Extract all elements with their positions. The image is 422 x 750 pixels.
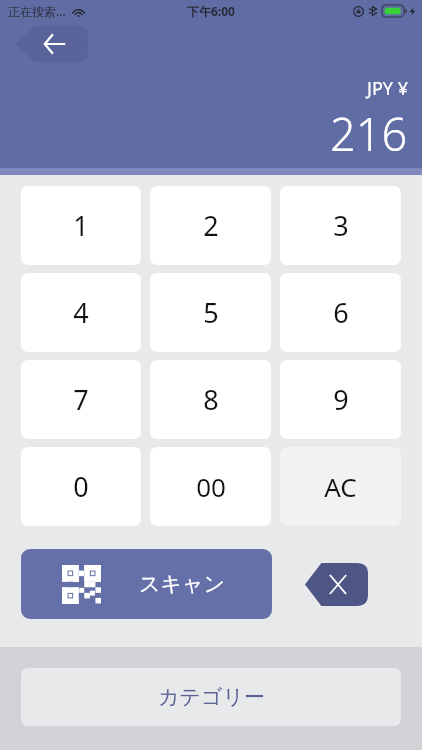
staticText: 9 [333,381,349,418]
button[interactable]: 8 [150,360,271,439]
staticText: 0 [73,468,89,505]
button[interactable]: Back [16,26,88,62]
button[interactable]: 6 [280,273,401,352]
button[interactable]: 7 [21,360,141,439]
staticText: 1 [73,207,89,244]
button[interactable]: 0 [21,447,141,526]
button[interactable]: 2 [150,186,271,265]
staticText: 7 [73,381,89,418]
button[interactable]: 9 [280,360,401,439]
button[interactable]: Delete [305,563,368,606]
staticText: 2 [203,207,219,244]
staticText: カテゴリー [158,684,265,710]
button[interactable]: 3 [280,186,401,265]
staticText: 6 [333,294,349,331]
staticText: 3 [333,207,349,244]
staticText: 216 [330,103,408,164]
staticText: スキャン [139,571,225,597]
button[interactable]: スキャン [21,549,272,619]
button[interactable]: 5 [150,273,271,352]
staticText: 00 [196,469,226,504]
staticText: 5 [203,294,219,331]
button[interactable]: AC [280,447,401,526]
button[interactable]: 4 [21,273,141,352]
staticText: 下午6:00 [187,3,235,19]
staticText: 8 [203,381,219,418]
button[interactable]: 00 [150,447,271,526]
button[interactable]: カテゴリー [21,668,401,726]
staticText: 正在搜索... [8,3,66,19]
staticText: AC [324,469,357,504]
staticText: JPY ¥ [367,76,408,101]
staticText: 4 [73,294,89,331]
button[interactable]: 1 [21,186,141,265]
